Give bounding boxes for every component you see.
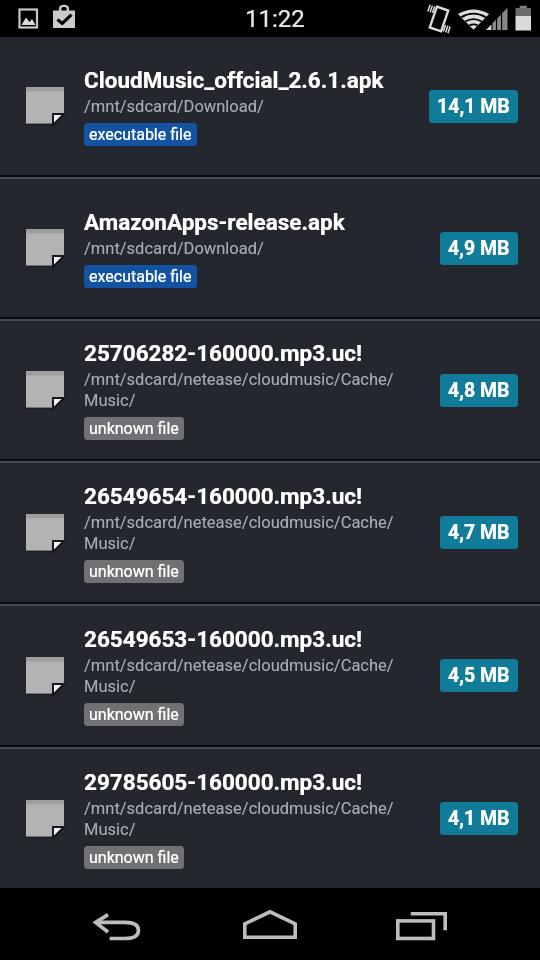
staticText: executable file [89,267,192,286]
staticText: /mnt/sdcard/netease/cloudmusic/Cache/ [84,799,394,818]
staticText: unknown file [89,562,179,581]
button[interactable]: 29785605-160000.mp3.uc! [0,749,540,888]
staticText: unknown file [89,419,179,438]
staticText: 4,9 MB [448,237,510,260]
staticText: unknown file [89,705,179,724]
button[interactable]: CloudMusic_offcial_2.6.1.apk [0,37,540,175]
staticText: AmazonApps-release.apk [84,209,345,235]
staticText: Music/ [84,391,136,410]
staticText: 4,7 MB [448,521,510,544]
button[interactable]: 26549654-160000.mp3.uc! [0,463,540,602]
button[interactable]: Home [180,888,300,960]
staticText: Music/ [84,534,136,553]
button[interactable]: Recents [300,888,540,960]
staticText: /mnt/sdcard/Download/ [84,239,264,258]
staticText: 25706282-160000.mp3.uc! [84,340,363,366]
staticText: 4,5 MB [448,664,510,687]
staticText: 4,1 MB [448,807,510,830]
staticText: 26549653-160000.mp3.uc! [84,626,363,652]
staticText: 11:22 [245,5,305,33]
staticText: 14,1 MB [437,95,510,118]
staticText: /mnt/sdcard/Download/ [84,97,264,116]
staticText: 29785605-160000.mp3.uc! [84,769,363,795]
staticText: /mnt/sdcard/netease/cloudmusic/Cache/ [84,656,394,675]
button[interactable]: Back [0,888,180,960]
button[interactable]: AmazonApps-release.apk [0,179,540,317]
staticText: 26549654-160000.mp3.uc! [84,483,363,509]
staticText: Music/ [84,677,136,696]
staticText: /mnt/sdcard/netease/cloudmusic/Cache/ [84,370,394,389]
button[interactable]: 26549653-160000.mp3.uc! [0,606,540,745]
staticText: Music/ [84,820,136,839]
staticText: executable file [89,125,192,144]
staticText: /mnt/sdcard/netease/cloudmusic/Cache/ [84,513,394,532]
staticText: CloudMusic_offcial_2.6.1.apk [84,67,384,93]
staticText: 4,8 MB [448,379,510,402]
staticText: unknown file [89,848,179,867]
button[interactable]: 25706282-160000.mp3.uc! [0,321,540,459]
